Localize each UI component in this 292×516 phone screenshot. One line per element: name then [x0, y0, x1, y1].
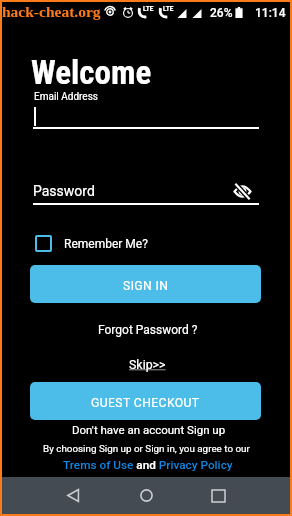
staticText: Remember Me? — [64, 237, 148, 251]
button[interactable]: Don't have an account Sign up — [72, 423, 226, 436]
button[interactable]: Forgot Password ? — [98, 323, 198, 337]
staticText: LTE — [163, 5, 174, 13]
staticText: LTE — [143, 5, 154, 13]
staticText: hack-cheat.org — [2, 3, 101, 20]
button[interactable]: Skip>> — [129, 357, 166, 372]
staticText: By choosing Sign up or Sign in, you agre… — [43, 443, 250, 455]
button[interactable]: Recent apps — [200, 477, 236, 514]
button[interactable]: Home — [128, 477, 164, 514]
button[interactable]: Toggle password visibility — [231, 180, 254, 203]
staticText: Password — [33, 183, 95, 199]
staticText: GUEST CHECKOUT — [91, 396, 200, 410]
staticText: Email Address — [34, 91, 98, 103]
staticText: 11:14 — [255, 6, 286, 20]
button[interactable]: GUEST CHECKOUT — [30, 382, 261, 420]
staticText: SIGN IN — [123, 279, 169, 293]
staticText: 26% — [210, 6, 233, 20]
button[interactable]: SIGN IN — [30, 265, 261, 303]
button[interactable]: Back — [55, 477, 91, 514]
staticText: Welcome — [31, 53, 152, 92]
button[interactable]: Remember Me? — [35, 235, 148, 252]
button[interactable]: Trems of Use and Privacy Policy — [63, 458, 233, 472]
